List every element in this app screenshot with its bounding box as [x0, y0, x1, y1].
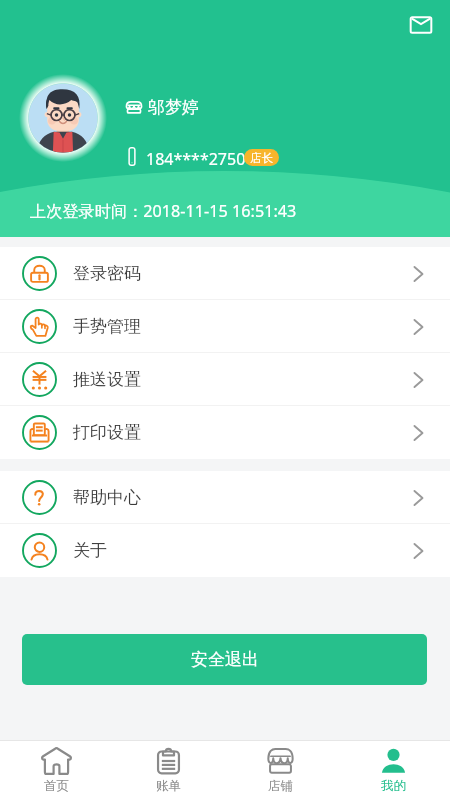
button[interactable]: 首页: [0, 741, 112, 800]
button[interactable]: 店铺: [224, 741, 337, 800]
staticText: 关于: [73, 540, 107, 561]
button[interactable]: Messages: [401, 5, 441, 45]
staticText: 推送设置: [73, 369, 141, 390]
staticText: 店铺: [268, 778, 293, 794]
staticText: 帮助中心: [73, 487, 141, 508]
staticText: 店长: [250, 151, 273, 165]
button[interactable]: 帮助中心: [0, 471, 450, 524]
button[interactable]: 登录密码: [0, 247, 450, 300]
staticText: 184****2750: [146, 148, 246, 170]
staticText: 邬梦婷: [148, 97, 199, 118]
button[interactable]: 打印设置: [0, 406, 450, 459]
button[interactable]: 手势管理: [0, 300, 450, 353]
button[interactable]: 账单: [112, 741, 224, 800]
staticText: 上次登录时间：2018-11-15 16:51:43: [30, 200, 297, 222]
button[interactable]: 我的: [337, 741, 450, 800]
staticText: 我的: [381, 778, 406, 794]
button[interactable]: 安全退出: [22, 634, 427, 685]
staticText: 打印设置: [73, 422, 141, 443]
staticText: 手势管理: [73, 316, 141, 337]
staticText: 登录密码: [73, 263, 141, 284]
staticText: 账单: [156, 778, 181, 794]
staticText: 首页: [44, 778, 69, 794]
button[interactable]: 关于: [0, 524, 450, 577]
button[interactable]: 推送设置: [0, 353, 450, 406]
staticText: 安全退出: [191, 649, 259, 670]
